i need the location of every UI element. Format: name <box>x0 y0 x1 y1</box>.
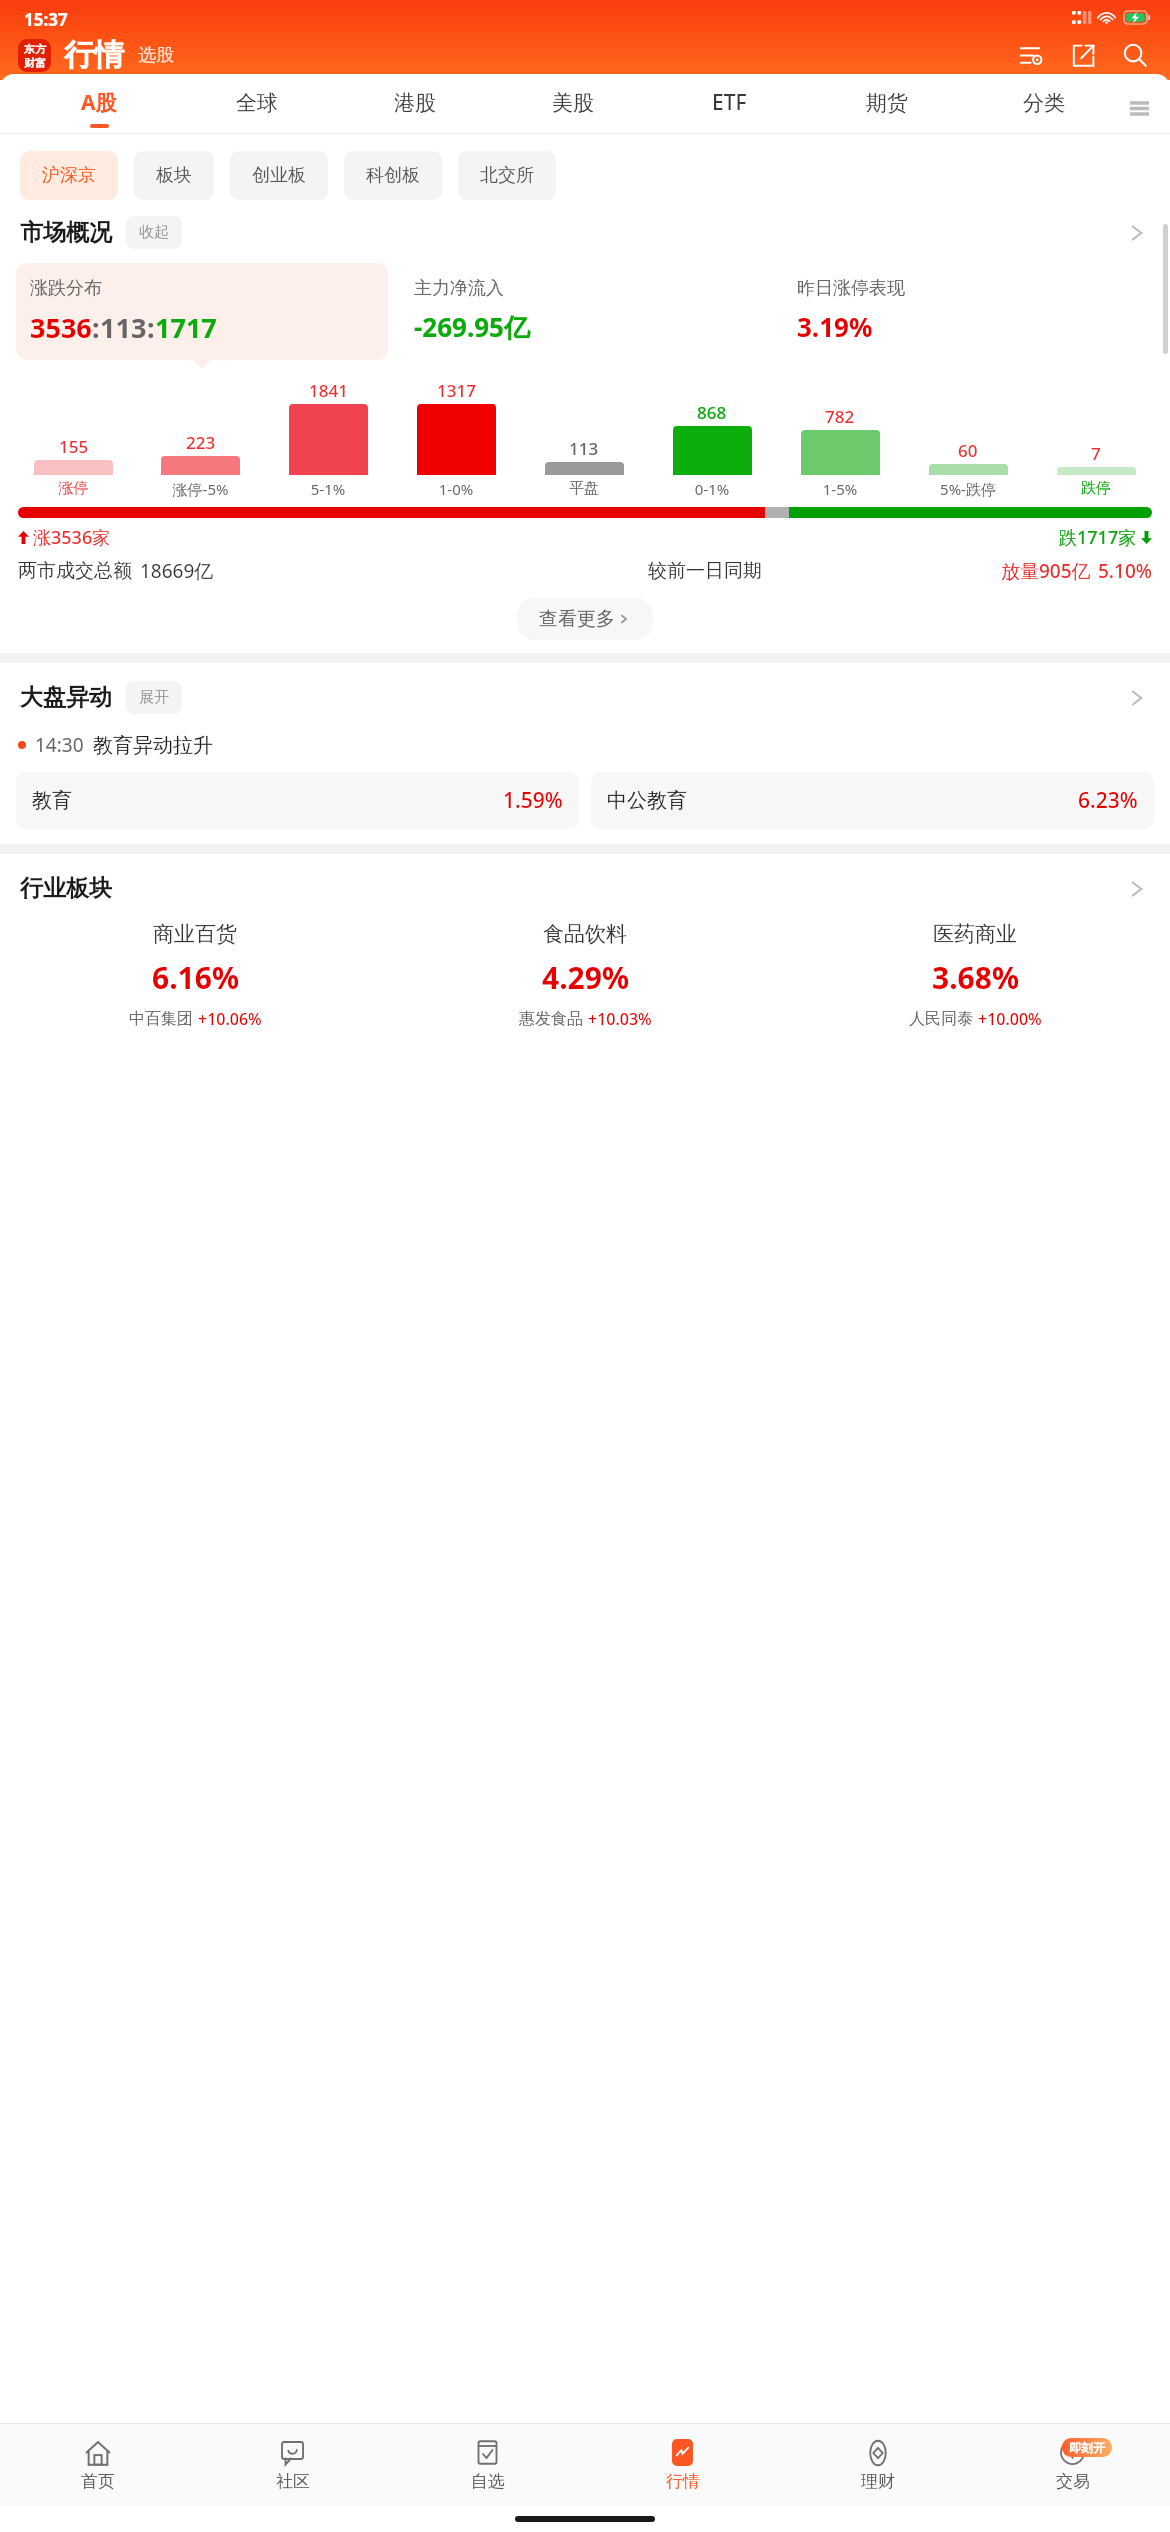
staticText: 商业百货 <box>153 921 237 947</box>
staticText: 涨跌分布 <box>30 277 102 300</box>
staticText: 平盘 <box>520 479 648 498</box>
button[interactable]: 美股 <box>494 90 651 127</box>
staticText: ETF <box>712 88 747 117</box>
staticText: 大盘异动 <box>20 683 112 712</box>
button[interactable]: 交易 <box>975 2433 1170 2498</box>
staticText: 涨3536家 <box>33 525 111 550</box>
staticText: 人民同泰 <box>909 1009 973 1029</box>
staticText: 医药商业 <box>933 921 1017 947</box>
button[interactable]: 展开 <box>126 681 182 714</box>
staticText: 跌停 <box>1032 479 1160 498</box>
button[interactable]: 选股 <box>138 40 174 71</box>
button[interactable]: 北交所 <box>458 151 556 200</box>
staticText: 美股 <box>552 90 594 116</box>
button[interactable]: 沪深京 <box>20 151 118 200</box>
staticText: 1.59% <box>503 786 563 815</box>
staticText: 155 <box>59 435 89 458</box>
button[interactable]: 中公教育 <box>591 772 1154 829</box>
button[interactable]: 期货 <box>808 90 965 127</box>
staticText: 1317 <box>437 379 476 402</box>
staticText: 选股 <box>138 44 174 67</box>
staticText: 自选 <box>471 2471 505 2492</box>
staticText: 4.29% <box>542 957 629 998</box>
staticText: 创业板 <box>252 164 306 187</box>
button[interactable]: ETF <box>651 88 808 128</box>
staticText: 行情 <box>64 36 124 74</box>
staticText: 行业板块 <box>20 874 112 903</box>
button[interactable]: 社区 <box>195 2433 390 2498</box>
button[interactable]: 查看更多 <box>517 598 653 640</box>
button[interactable]: 主力净流入 <box>400 263 771 359</box>
staticText: 1841 <box>309 379 348 402</box>
button[interactable]: 分类 <box>965 90 1122 127</box>
button[interactable]: 自选 <box>390 2433 585 2498</box>
button[interactable]: 收起 <box>126 216 182 249</box>
staticText: 涨停 <box>10 479 137 498</box>
staticText: 60 <box>958 439 978 462</box>
button[interactable]: 科创板 <box>344 151 442 200</box>
staticText: 展开 <box>139 688 169 707</box>
staticText: 1-0% <box>392 479 520 499</box>
staticText: 1-5% <box>776 479 904 499</box>
button[interactable]: 行情 <box>585 2433 780 2498</box>
staticText: 食品饮料 <box>543 921 627 947</box>
button[interactable]: 医药商业 <box>780 919 1170 1032</box>
staticText: 放量905亿 <box>1001 558 1091 584</box>
staticText: 223 <box>186 431 216 454</box>
button[interactable]: More tabs <box>1122 102 1156 115</box>
staticText: 5%-跌停 <box>904 479 1032 499</box>
staticText: A股 <box>81 88 117 117</box>
button[interactable]: 教育 <box>16 772 579 829</box>
staticText: 板块 <box>156 164 192 187</box>
staticText: -269.95亿 <box>414 309 530 345</box>
staticText: 主力净流入 <box>414 277 504 300</box>
button[interactable]: 全球 <box>178 90 336 127</box>
staticText: 5-1% <box>264 479 392 499</box>
staticText: 6.16% <box>152 957 239 998</box>
button[interactable]: Market moves details <box>1124 685 1150 711</box>
staticText: 18669亿 <box>140 558 214 584</box>
staticText: 较前一日同期 <box>648 559 762 583</box>
button[interactable]: Market overview details <box>1124 220 1150 246</box>
staticText: 行情 <box>666 2471 700 2492</box>
button[interactable]: 昨日涨停表现 <box>783 263 1154 358</box>
staticText: 14:30 <box>35 732 84 758</box>
staticText: 首页 <box>81 2471 115 2492</box>
staticText: 全球 <box>236 90 278 116</box>
staticText: 782 <box>825 405 855 428</box>
staticText: +10.00% <box>978 1008 1042 1030</box>
button[interactable]: Search <box>1118 38 1152 72</box>
staticText: 社区 <box>276 2471 310 2492</box>
button[interactable]: Share <box>1066 38 1100 72</box>
staticText: : <box>92 309 100 346</box>
button[interactable]: 理财 <box>780 2433 975 2498</box>
staticText: 沪深京 <box>42 164 96 187</box>
button[interactable]: A股 <box>20 88 178 128</box>
staticText: 涨停-5% <box>137 479 264 499</box>
staticText: 收起 <box>139 223 169 242</box>
button[interactable]: 首页 <box>0 2433 195 2498</box>
staticText: 7 <box>1091 442 1101 465</box>
button[interactable]: Filter settings <box>1014 38 1048 72</box>
button[interactable]: 港股 <box>336 90 494 127</box>
staticText: 港股 <box>394 90 436 116</box>
staticText: 科创板 <box>366 164 420 187</box>
staticText: 东方 <box>24 42 46 56</box>
staticText: 中公教育 <box>607 788 687 813</box>
button[interactable]: 食品饮料 <box>390 919 780 1032</box>
staticText: 3.68% <box>932 957 1019 998</box>
button[interactable]: 创业板 <box>230 151 328 200</box>
staticText: 1717 <box>155 309 217 346</box>
button[interactable]: 板块 <box>134 151 214 200</box>
button[interactable]: Industry sectors details <box>1124 876 1150 902</box>
staticText: 113 <box>569 437 599 460</box>
staticText: 分类 <box>1023 90 1065 116</box>
staticText: 交易 <box>1056 2471 1090 2492</box>
button[interactable]: 商业百货 <box>0 919 390 1032</box>
button[interactable]: 涨跌分布 <box>16 263 388 360</box>
staticText: 教育 <box>32 788 72 813</box>
staticText: 惠发食品 <box>519 1009 583 1029</box>
staticText: 跌1717家 <box>1059 525 1137 550</box>
staticText: 两市成交总额 <box>18 559 132 583</box>
staticText: +10.06% <box>198 1008 262 1030</box>
